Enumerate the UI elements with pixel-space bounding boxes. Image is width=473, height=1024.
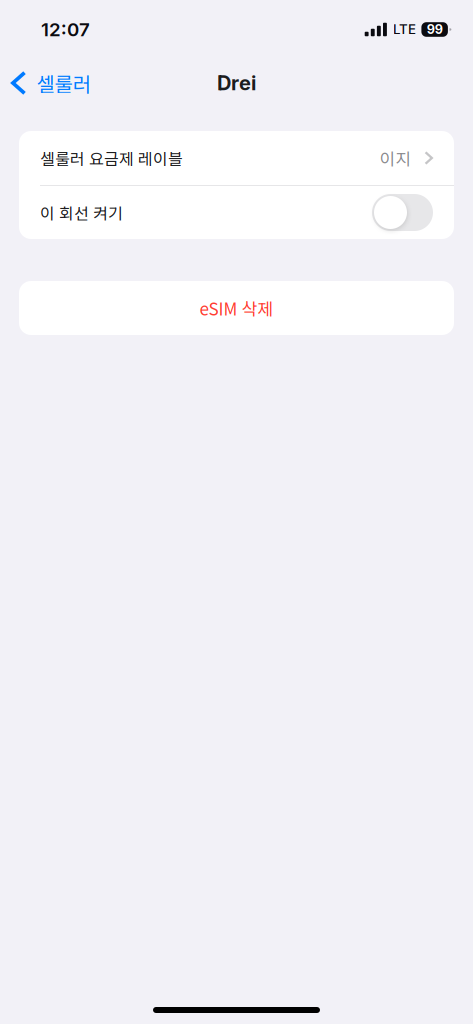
staticText: LTE — [393, 21, 416, 37]
button[interactable]: 셀룰러 — [0, 61, 98, 104]
staticText: 셀룰러 — [36, 68, 90, 97]
staticText: eSIM 삭제 — [199, 296, 273, 320]
button[interactable]: 셀룰러 요금제 레이블 — [19, 131, 454, 185]
staticText: 이지 — [379, 146, 411, 170]
button[interactable]: eSIM 삭제 — [19, 281, 454, 335]
staticText: 99 — [427, 22, 443, 37]
staticText: 이 회선 켜기 — [40, 201, 123, 224]
staticText: 12:07 — [41, 18, 90, 41]
staticText: Drei — [217, 71, 256, 95]
button[interactable]: 이 회선 켜기 — [19, 186, 454, 239]
staticText: 셀룰러 요금제 레이블 — [40, 146, 183, 170]
